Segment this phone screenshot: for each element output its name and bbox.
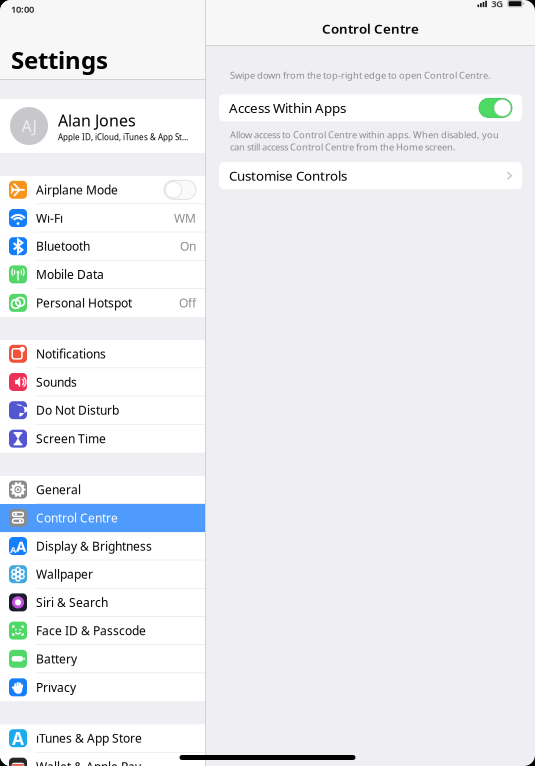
staticText: WM (174, 210, 196, 226)
button[interactable]: Access Within Apps (219, 94, 522, 121)
staticText: A (16, 536, 26, 556)
button[interactable]: General (0, 476, 205, 504)
button[interactable]: Mobile Data (0, 261, 205, 289)
button[interactable]: Do Not Disturb (0, 396, 205, 425)
staticText: On (180, 238, 196, 254)
button[interactable]: AJ (0, 99, 205, 153)
staticText: Wi-Fi (36, 210, 63, 226)
staticText: Sounds (36, 374, 77, 390)
button[interactable]: Wi-Fi (0, 204, 205, 232)
staticText: Mobile Data (36, 266, 104, 282)
staticText: Swipe down from the top-right edge to op… (230, 69, 491, 81)
button[interactable]: Wallet & Apple Pay (0, 753, 205, 766)
staticText: Display & Brightness (36, 538, 152, 554)
button[interactable]: Bluetooth (0, 232, 205, 261)
staticText: Wallpaper (36, 566, 93, 582)
staticText: Control Centre (322, 20, 419, 37)
button[interactable]: Notifications (0, 340, 205, 368)
staticText: Privacy (36, 679, 76, 695)
staticText: Control Centre (36, 510, 118, 526)
staticText: General (36, 482, 81, 497)
staticText: A (12, 727, 24, 750)
button[interactable]: Screen Time (0, 425, 205, 453)
staticText: 3G (491, 0, 503, 10)
button[interactable]: Siri & Search (0, 589, 205, 617)
staticText: Settings (11, 44, 108, 75)
staticText: Screen Time (36, 431, 106, 447)
staticText: Apple ID, iCloud, iTunes & App St… (58, 132, 188, 142)
staticText: iTunes & App Store (36, 730, 142, 746)
staticText: Battery (36, 651, 77, 667)
staticText: Wallet & Apple Pay (36, 759, 141, 766)
button[interactable]: Personal Hotspot (0, 289, 205, 317)
staticText: Customise Controls (229, 167, 347, 184)
button[interactable]: Battery (0, 645, 205, 673)
staticText: 10:00 (11, 3, 34, 15)
staticText: AJ (21, 115, 36, 137)
staticText: A (10, 543, 16, 556)
staticText: Face ID & Passcode (36, 623, 146, 638)
staticText: Do Not Disturb (36, 402, 119, 418)
button[interactable]: A (0, 532, 205, 560)
button[interactable]: Control Centre (0, 504, 205, 532)
button[interactable]: Wallpaper (0, 560, 205, 589)
staticText: Alan Jones (58, 110, 136, 131)
button[interactable]: A (0, 724, 205, 753)
staticText: Siri & Search (36, 594, 108, 610)
staticText: Bluetooth (36, 238, 90, 254)
staticText: Allow access to Control Centre within ap… (230, 128, 499, 153)
button[interactable]: Privacy (0, 673, 205, 701)
staticText: Airplane Mode (36, 182, 118, 198)
button[interactable]: Sounds (0, 368, 205, 396)
staticText: Notifications (36, 346, 106, 362)
button[interactable]: Airplane Mode (0, 176, 205, 204)
staticText: Access Within Apps (229, 99, 346, 117)
staticText: Personal Hotspot (36, 295, 132, 311)
button[interactable]: Face ID & Passcode (0, 617, 205, 645)
staticText: Off (179, 295, 196, 311)
button[interactable]: Customise Controls (219, 162, 522, 189)
